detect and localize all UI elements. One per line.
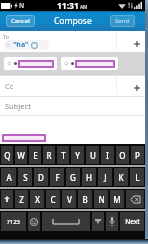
button[interactable]: J [98,168,112,186]
staticText: R [46,150,52,161]
button[interactable]: Y [71,146,84,164]
staticText: 11:31 [57,0,79,11]
button[interactable]: Add Cc recipient [129,80,144,95]
staticText: S [23,172,28,183]
staticText: T [61,150,66,161]
button[interactable]: SPACE [42,212,90,231]
staticText: Next [125,217,140,226]
staticText: Cc [5,81,14,91]
staticText: N [19,1,25,10]
button[interactable]: G [66,168,80,186]
button[interactable]: M [110,190,124,208]
staticText: Z [19,194,24,205]
button[interactable]: BACK [126,190,144,208]
staticText: To [3,33,10,40]
button[interactable]: Q [1,146,13,164]
button[interactable]: EMOJI [28,212,40,231]
staticText: G [70,172,76,183]
button[interactable]: W [15,146,27,164]
staticText: F [55,172,60,183]
staticText: K [118,172,124,183]
button[interactable]: Next [120,212,144,231]
staticText: I [106,150,109,161]
staticText: V [67,194,72,205]
staticText: E [33,150,38,161]
staticText: Cancel [11,17,30,25]
button[interactable] [61,57,118,70]
button[interactable]: MIC [106,212,118,231]
button[interactable]: S [18,168,32,186]
staticText: O [119,150,126,161]
staticText: M [113,194,121,205]
button[interactable]: O [116,146,129,164]
staticText: A [6,172,12,183]
staticText: B [82,194,88,205]
staticText: Q [4,150,11,161]
button[interactable]: SHIFT [1,190,13,208]
staticText: U [90,150,96,161]
staticText: Send [115,17,130,25]
button[interactable]: B [78,190,92,208]
button[interactable]: Send [110,15,135,27]
button[interactable]: N [94,190,108,208]
staticText: Compose [54,15,92,27]
button[interactable]: F [50,168,64,186]
staticText: N [98,194,105,205]
button[interactable]: I [101,146,114,164]
staticText: "ha" [13,40,29,50]
button[interactable]: "ha" [4,40,49,50]
button[interactable]: A [1,168,16,186]
staticText: C [50,194,56,205]
staticText: Y [75,150,80,161]
button[interactable]: C [46,190,60,208]
button[interactable]: X [30,190,44,208]
button[interactable]: ?123 [1,212,26,231]
staticText: D [38,172,44,183]
staticText: X [35,194,40,205]
staticText: P [135,150,140,161]
button[interactable]: R [43,146,55,164]
button[interactable]: P [131,146,144,164]
button[interactable]: Add recipient [129,36,144,51]
staticText: J [104,172,107,183]
button[interactable]: E [29,146,41,164]
button[interactable] [4,57,57,70]
button[interactable]: K [114,168,128,186]
staticText: W [17,150,25,161]
staticText: L [135,172,140,183]
button[interactable]: L [130,168,144,186]
button[interactable]: SETTINGS [92,212,104,231]
button[interactable]: H [82,168,96,186]
staticText: Subject [5,101,31,111]
button[interactable]: Cancel [6,15,35,27]
button[interactable]: V [62,190,76,208]
staticText: H [86,172,92,183]
button[interactable]: D [34,168,48,186]
button[interactable]: Z [15,190,28,208]
button[interactable]: T [57,146,69,164]
button[interactable]: U [86,146,99,164]
staticText: ?123 [7,218,20,226]
staticText: AM [80,4,88,10]
